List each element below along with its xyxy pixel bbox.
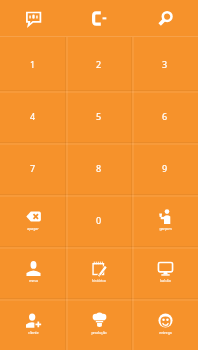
staticText: mesa bbox=[29, 278, 38, 283]
staticText: entrega bbox=[159, 330, 172, 335]
button[interactable]: cliente bbox=[0, 298, 66, 350]
button[interactable]: produção bbox=[66, 298, 132, 350]
staticText: garçom bbox=[159, 226, 172, 231]
staticText: 6 bbox=[162, 110, 168, 122]
staticText: 9 bbox=[162, 162, 168, 174]
button[interactable]: Search bbox=[132, 0, 198, 36]
button[interactable]: Messages bbox=[0, 0, 66, 36]
button[interactable]: balcão bbox=[132, 246, 198, 298]
staticText: 4 bbox=[30, 110, 36, 122]
staticText: histórico bbox=[92, 278, 106, 283]
button[interactable]: 2 bbox=[66, 37, 132, 90]
button[interactable]: mesa bbox=[0, 246, 66, 298]
staticText: 3 bbox=[162, 58, 168, 70]
button[interactable]: 1 bbox=[0, 37, 66, 90]
staticText: 5 bbox=[96, 110, 102, 122]
button[interactable]: 4 bbox=[0, 90, 66, 142]
button[interactable]: 3 bbox=[132, 37, 198, 90]
staticText: apagar bbox=[27, 226, 39, 231]
button[interactable]: histórico bbox=[66, 246, 132, 298]
staticText: cliente bbox=[28, 330, 39, 335]
button[interactable]: 9 bbox=[132, 142, 198, 194]
button[interactable]: apagar bbox=[0, 194, 66, 246]
staticText: balcão bbox=[160, 278, 171, 283]
button[interactable]: 8 bbox=[66, 142, 132, 194]
button[interactable]: 6 bbox=[132, 90, 198, 142]
button[interactable]: 0 bbox=[66, 194, 132, 246]
button[interactable]: 7 bbox=[0, 142, 66, 194]
staticText: 0 bbox=[96, 214, 102, 226]
staticText: 2 bbox=[96, 58, 102, 70]
staticText: 7 bbox=[30, 162, 36, 174]
button[interactable]: 5 bbox=[66, 90, 132, 142]
button[interactable]: entrega bbox=[132, 298, 198, 350]
button[interactable]: Volume bbox=[66, 0, 132, 36]
staticText: produção bbox=[91, 330, 107, 335]
button[interactable]: garçom bbox=[132, 194, 198, 246]
staticText: 1 bbox=[30, 58, 36, 70]
staticText: 8 bbox=[96, 162, 102, 174]
